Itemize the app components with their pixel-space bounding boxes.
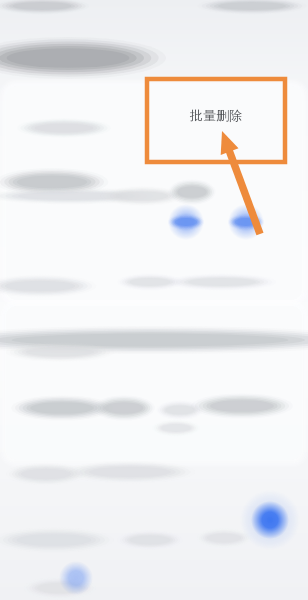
other: Arrow pointing to 批量删除 — [0, 0, 308, 600]
staticText: 批量删除 — [190, 107, 242, 123]
button[interactable]: 批量删除 — [145, 77, 287, 164]
